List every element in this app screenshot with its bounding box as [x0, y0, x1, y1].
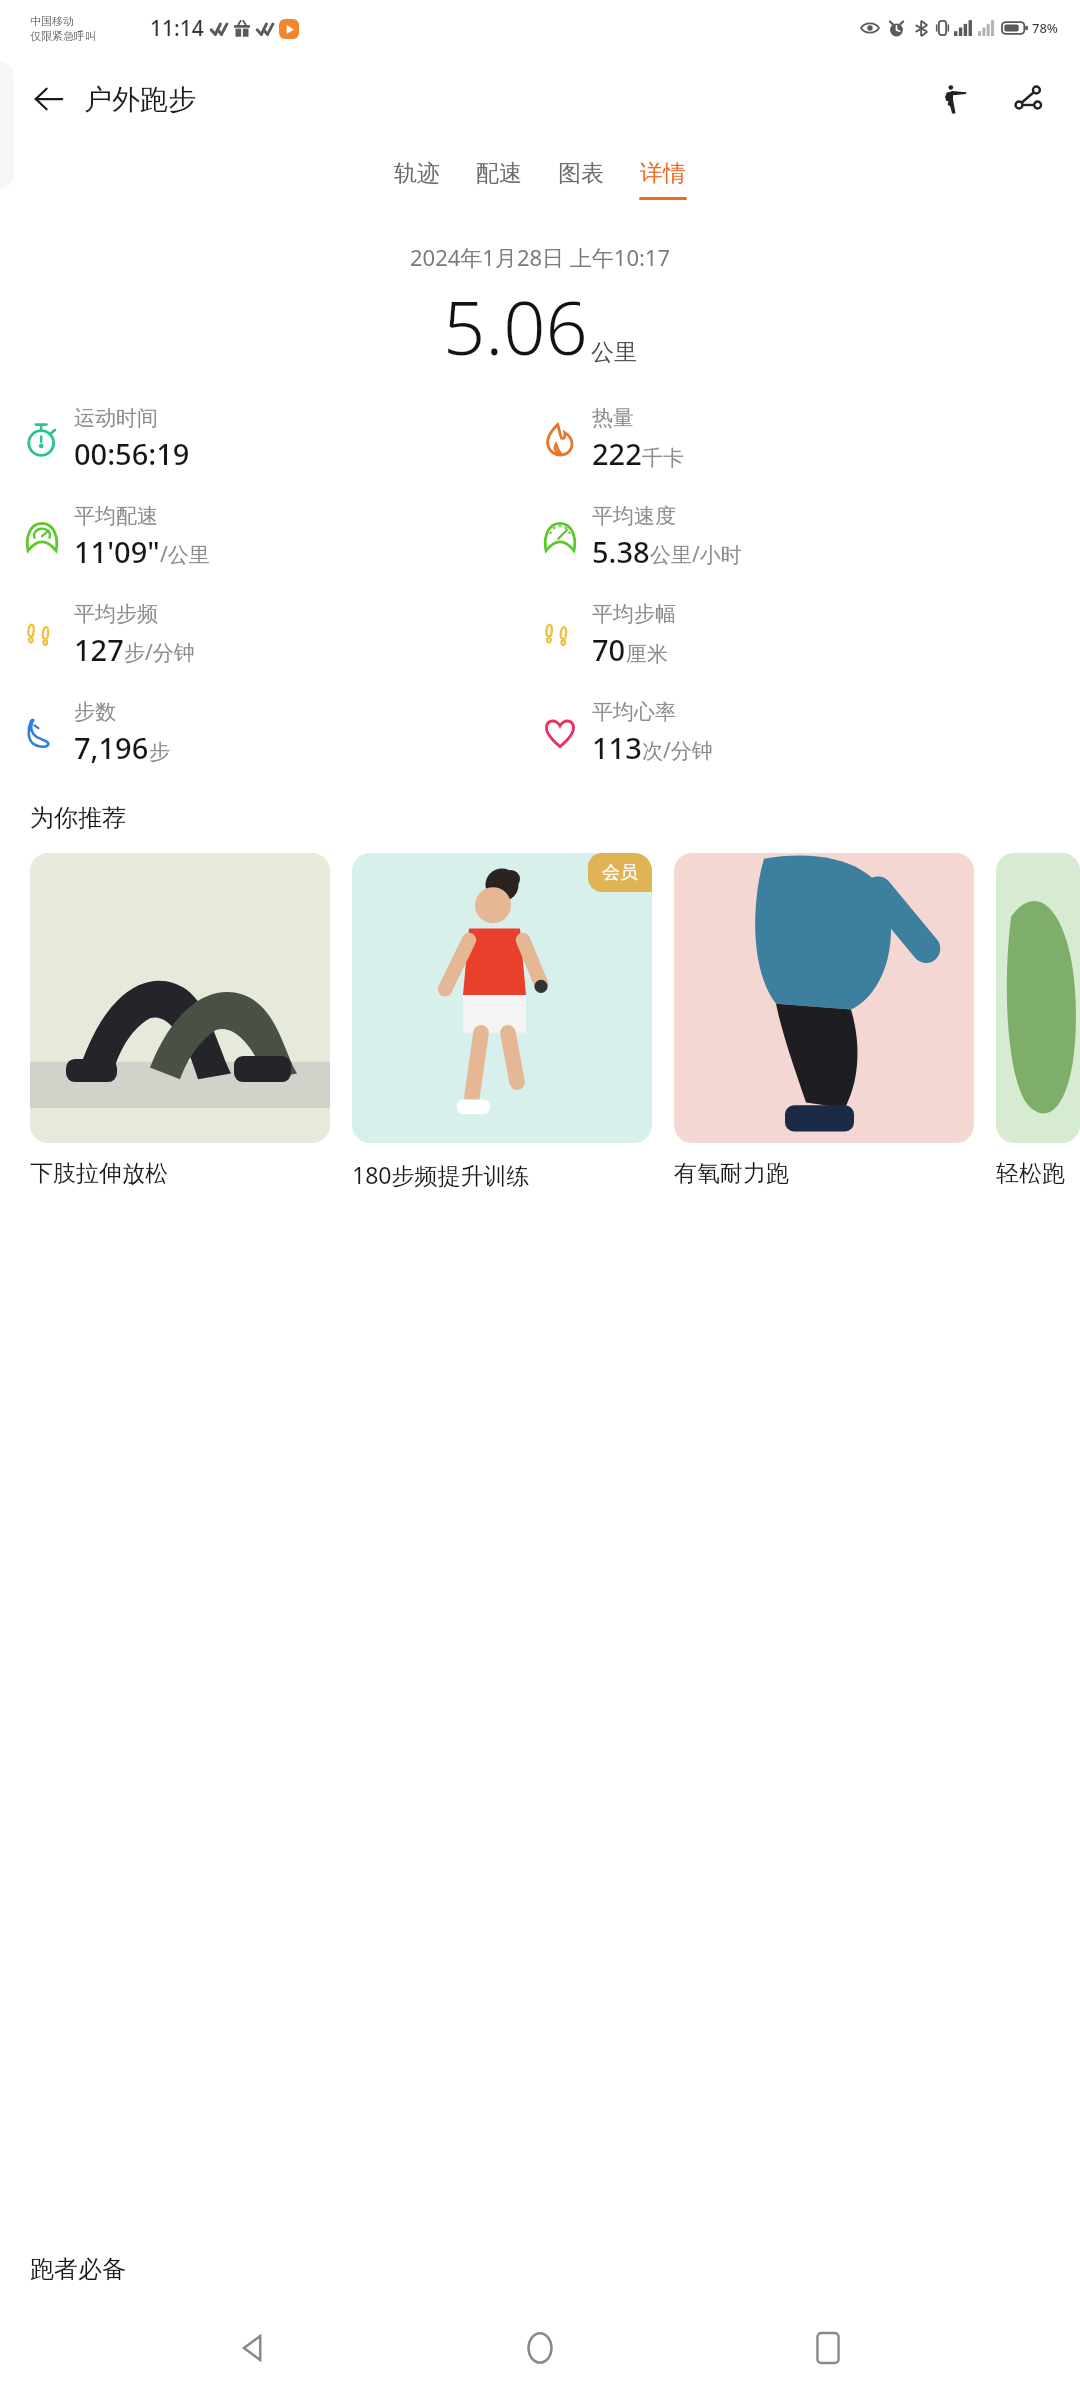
button[interactable]: 平均速度	[540, 503, 1080, 571]
staticText: 厘米	[626, 641, 668, 667]
staticText: 图表	[558, 159, 604, 188]
staticText: 5.06	[443, 276, 588, 377]
button[interactable]: 轨迹	[393, 159, 441, 200]
staticText: 180步频提升训练	[352, 1159, 530, 1190]
staticText: 2024年1月28日 上午10:17	[410, 242, 671, 272]
staticText: 5.38	[592, 532, 650, 571]
staticText: 为你推荐	[30, 803, 126, 833]
button[interactable]: 步数	[22, 699, 540, 767]
staticText: 户外跑步	[84, 82, 196, 117]
staticText: 00:56:19	[74, 434, 190, 473]
button[interactable]: Back	[218, 2313, 288, 2383]
button[interactable]: 平均心率	[540, 699, 1080, 767]
staticText: 轻松跑	[996, 1159, 1065, 1188]
staticText: 次/分钟	[642, 736, 713, 765]
button[interactable]: 平均步频	[22, 601, 540, 669]
staticText: 公里	[591, 338, 637, 367]
staticText: 70	[592, 630, 626, 669]
staticText: 有氧耐力跑	[674, 1159, 789, 1188]
button[interactable]: Share	[1002, 73, 1054, 125]
button[interactable]: 会员	[352, 853, 652, 1190]
staticText: 11'09"	[74, 532, 160, 571]
button[interactable]: 热量	[540, 405, 1080, 473]
staticText: 公里/小时	[650, 540, 742, 569]
button[interactable]: 配速	[475, 159, 523, 200]
staticText: 跑者必备	[30, 2254, 126, 2284]
button[interactable]: 详情	[639, 159, 687, 200]
button[interactable]: 平均步幅	[540, 601, 1080, 669]
staticText: /公里	[160, 540, 210, 569]
button[interactable]: Running mode	[928, 73, 980, 125]
staticText: 步/分钟	[124, 638, 195, 667]
staticText: 7,196	[74, 728, 149, 767]
staticText: 平均心率	[592, 699, 676, 725]
staticText: 中国移动	[30, 14, 74, 28]
button[interactable]: Back	[22, 72, 76, 126]
button[interactable]: 有氧耐力跑	[674, 853, 974, 1188]
staticText: 平均配速	[74, 503, 158, 529]
button[interactable]: 平均配速	[22, 503, 540, 571]
staticText: 127	[74, 630, 124, 669]
staticText: 222	[592, 434, 642, 473]
staticText: 千卡	[642, 445, 684, 471]
staticText: 轨迹	[394, 159, 440, 188]
staticText: 步	[149, 739, 170, 765]
staticText: 热量	[592, 405, 634, 431]
staticText: 仅限紧急呼叫	[30, 29, 96, 43]
staticText: 113	[592, 728, 642, 767]
staticText: 平均步频	[74, 601, 158, 627]
staticText: 11:14	[150, 14, 204, 43]
staticText: 详情	[640, 159, 686, 188]
staticText: 会员	[602, 861, 638, 884]
button[interactable]: 运动时间	[22, 405, 540, 473]
staticText: 平均速度	[592, 503, 676, 529]
staticText: 配速	[476, 159, 522, 188]
staticText: 运动时间	[74, 405, 158, 431]
button[interactable]: 轻松跑	[996, 853, 1080, 1188]
staticText: 平均步幅	[592, 601, 676, 627]
staticText: 步数	[74, 699, 116, 725]
button[interactable]: 下肢拉伸放松	[30, 853, 330, 1188]
staticText: 下肢拉伸放松	[30, 1159, 168, 1188]
button[interactable]: Home	[505, 2313, 575, 2383]
button[interactable]: Recents	[793, 2313, 863, 2383]
staticText: 78%	[1032, 19, 1058, 37]
button[interactable]: 图表	[557, 159, 605, 200]
